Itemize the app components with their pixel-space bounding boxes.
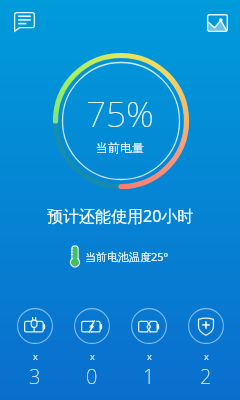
- staticText: 预计还能使用20小时: [47, 205, 194, 227]
- staticText: 2: [200, 363, 212, 390]
- staticText: x: [90, 350, 95, 362]
- staticText: 0: [86, 363, 98, 390]
- staticText: 当前电池温度25°: [85, 249, 169, 264]
- button[interactable]: x: [74, 308, 110, 390]
- staticText: 1: [143, 363, 155, 390]
- button[interactable]: x: [17, 308, 53, 390]
- staticText: 当前电量: [96, 140, 144, 155]
- button[interactable]: x: [131, 308, 167, 390]
- staticText: x: [147, 350, 152, 362]
- staticText: 3: [29, 363, 41, 390]
- staticText: 75%: [86, 90, 154, 138]
- button[interactable]: Feedback: [9, 7, 39, 37]
- staticText: x: [33, 350, 38, 362]
- button[interactable]: x: [188, 308, 224, 390]
- button[interactable]: Gallery: [202, 8, 232, 38]
- staticText: x: [204, 350, 209, 362]
